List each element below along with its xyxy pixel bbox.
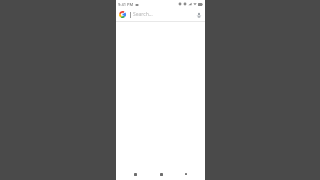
button[interactable]: Google bbox=[116, 8, 205, 21]
button[interactable]: Back bbox=[129, 168, 141, 180]
staticText: Search… bbox=[133, 11, 153, 18]
staticText: 9:41 PM bbox=[118, 2, 134, 7]
button[interactable]: Recents bbox=[180, 168, 192, 180]
button[interactable]: Home bbox=[155, 168, 167, 180]
button[interactable]: Google bbox=[119, 11, 126, 18]
button[interactable]: Voice search bbox=[196, 12, 202, 18]
